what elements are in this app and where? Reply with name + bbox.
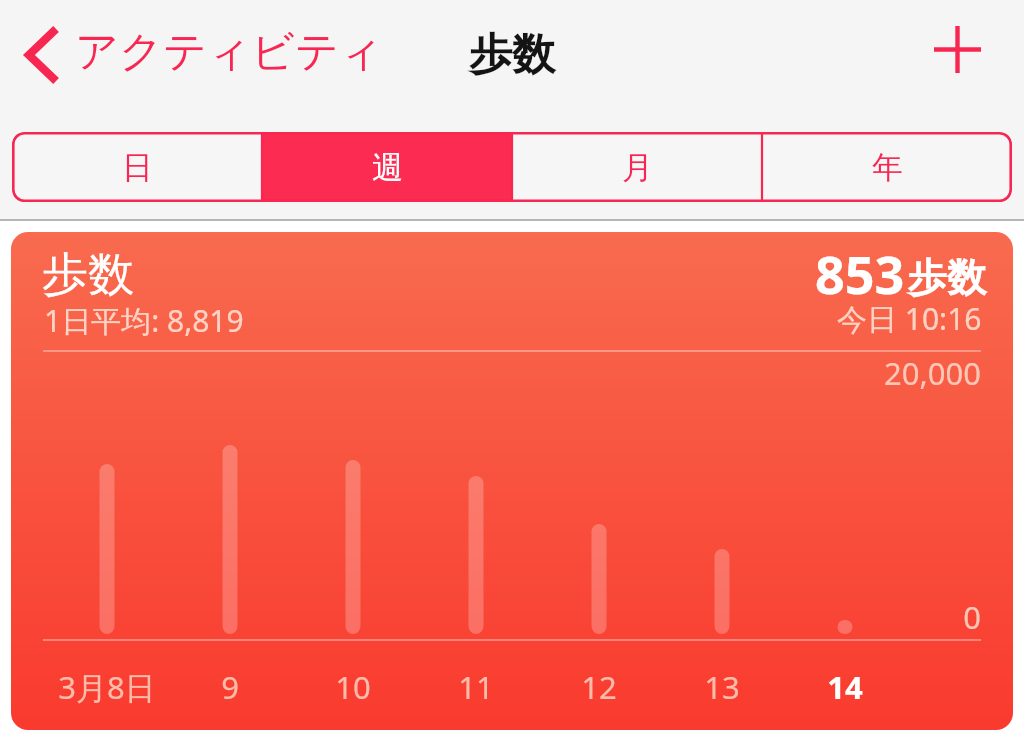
staticText: 歩数 (42, 246, 134, 304)
button[interactable]: 日 (12, 132, 262, 202)
staticText: 13 (704, 666, 740, 708)
staticText: 11 (458, 666, 494, 708)
button[interactable]: Add data (921, 13, 993, 85)
staticText: 12 (581, 666, 617, 708)
button[interactable]: 週 (262, 132, 512, 202)
staticText: 1日平均: 8,819 (44, 300, 244, 341)
button[interactable]: 月 (512, 132, 762, 202)
staticText: 週 (372, 148, 403, 187)
staticText: 今日 10:16 (837, 298, 982, 339)
staticText: 20,000 (884, 352, 981, 394)
staticText: 歩数 (908, 253, 986, 302)
button[interactable]: アクティビティ (0, 9, 400, 101)
staticText: 3月8日 (58, 666, 156, 708)
button[interactable]: 歩数 (11, 232, 1013, 730)
staticText: 歩数 (469, 28, 555, 82)
button[interactable]: 年 (762, 132, 1012, 202)
staticText: 10 (335, 666, 371, 708)
staticText: 日 (122, 148, 153, 187)
staticText: 9 (221, 666, 239, 708)
staticText: 月 (622, 148, 653, 187)
staticText: 年 (872, 148, 903, 187)
staticText: 14 (827, 666, 863, 708)
staticText: 0 (963, 596, 981, 638)
staticText: アクティビティ (75, 25, 384, 79)
staticText: 853 (815, 238, 905, 309)
